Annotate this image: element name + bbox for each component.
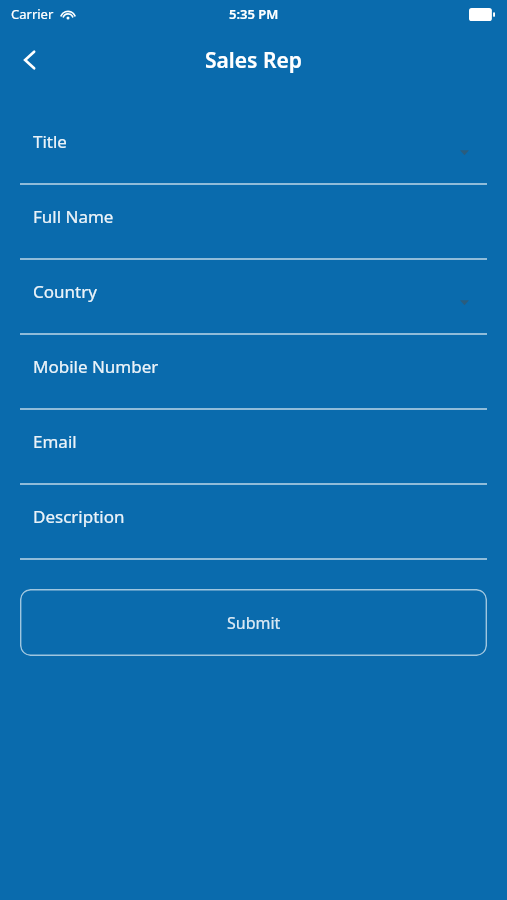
button[interactable]: Title [0, 110, 507, 185]
button[interactable]: Email [0, 410, 507, 485]
button[interactable]: Back [8, 38, 52, 82]
button[interactable]: Country [0, 260, 507, 335]
staticText: Sales Rep [205, 46, 302, 75]
staticText: Title [33, 130, 67, 153]
staticText: Mobile Number [33, 355, 159, 378]
button[interactable]: Description [0, 485, 507, 560]
staticText: Submit [227, 612, 281, 634]
staticText: Email [33, 430, 77, 453]
button[interactable]: Mobile Number [0, 335, 507, 410]
button[interactable]: Full Name [0, 185, 507, 260]
staticText: 5:35 PM [229, 5, 279, 23]
staticText: Description [33, 505, 125, 528]
button[interactable]: Submit [20, 589, 487, 656]
staticText: Carrier [11, 5, 54, 23]
staticText: Country [33, 280, 97, 303]
staticText: Full Name [33, 205, 114, 228]
